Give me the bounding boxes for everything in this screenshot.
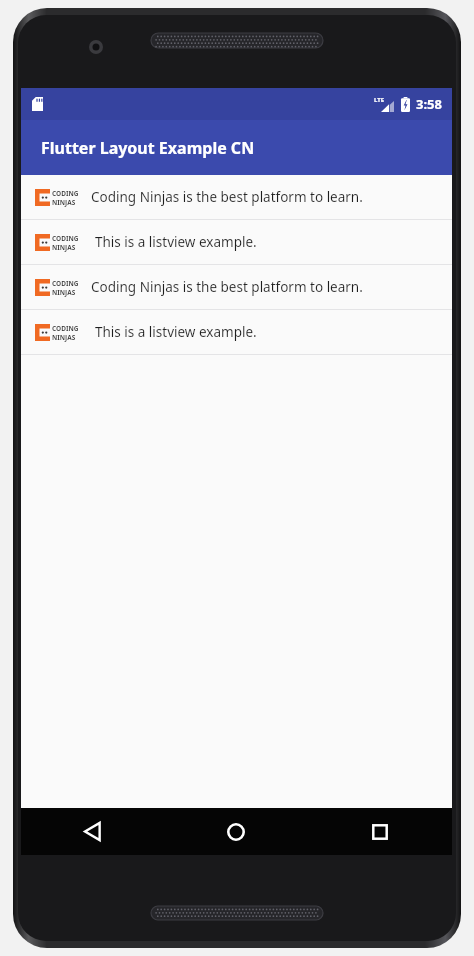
button[interactable]: Back [21,808,164,855]
staticText: CODING [52,324,79,333]
button[interactable]: CODING [21,265,452,309]
button[interactable]: CODING [21,175,452,219]
staticText: This is a listview example. [95,233,257,251]
staticText: 3:58 [416,95,442,113]
staticText: LTE [374,96,385,104]
staticText: NINJAS [52,333,76,342]
staticText: NINJAS [52,198,76,207]
staticText: CODING [52,279,79,288]
button[interactable]: CODING [21,220,452,264]
button[interactable]: Home [164,808,308,855]
staticText: CODING [52,189,79,198]
staticText: NINJAS [52,243,76,252]
button[interactable]: CODING [21,310,452,354]
button[interactable]: Recent apps [308,808,452,855]
staticText: Coding Ninjas is the best platform to le… [91,278,363,296]
staticText: NINJAS [52,288,76,297]
staticText: CODING [52,234,79,243]
staticText: This is a listview example. [95,323,257,341]
staticText: Coding Ninjas is the best platform to le… [91,188,363,206]
staticText: Flutter Layout Example CN [41,137,255,159]
